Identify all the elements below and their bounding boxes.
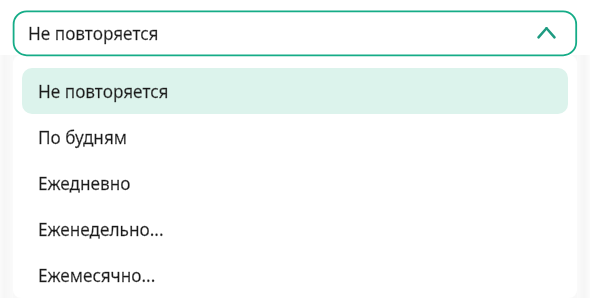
button[interactable]: По будням xyxy=(22,114,568,160)
staticText: Не повторяется xyxy=(28,22,159,45)
button[interactable]: Ежедневно xyxy=(22,160,568,206)
staticText: Ежемесячно... xyxy=(38,264,156,287)
staticText: По будням xyxy=(38,126,128,149)
button[interactable]: Не повторяется xyxy=(13,11,577,56)
button[interactable]: Ежемесячно... xyxy=(22,252,568,298)
staticText: Ежедневно xyxy=(38,172,131,195)
button[interactable]: Свернуть список xyxy=(535,22,559,46)
button[interactable]: Еженедельно... xyxy=(22,206,568,252)
staticText: Ежемесячно... xyxy=(38,264,156,287)
staticText: Еженедельно... xyxy=(38,218,164,241)
staticText: Не повторяется xyxy=(38,80,169,103)
staticText: Ежедневно xyxy=(38,172,131,195)
staticText: Еженедельно... xyxy=(38,218,164,241)
staticText: Не повторяется xyxy=(38,80,169,103)
staticText: По будням xyxy=(38,126,128,149)
button[interactable]: Не повторяется xyxy=(22,68,568,114)
staticText: Не повторяется xyxy=(28,22,159,45)
